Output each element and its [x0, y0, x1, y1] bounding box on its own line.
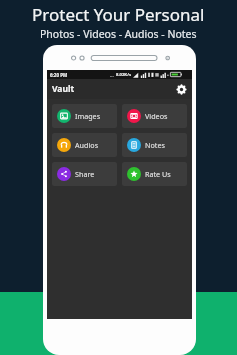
staticText: Rate Us: [145, 169, 171, 179]
staticText: Share: [75, 169, 95, 179]
staticText: Notes: [145, 140, 165, 150]
staticText: Images: [75, 111, 101, 121]
staticText: Photos - Videos - Audios - Notes: [40, 27, 197, 41]
staticText: 6:20 PM: [50, 72, 68, 78]
button[interactable]: Notes: [122, 133, 187, 157]
staticText: ...: [110, 72, 114, 78]
staticText: 8.02K/s: [116, 72, 131, 78]
staticText: Vault: [52, 83, 75, 95]
button[interactable]: Images: [52, 104, 117, 128]
staticText: Protect Your Personal: [32, 3, 205, 26]
button[interactable]: Videos: [122, 104, 187, 128]
button[interactable]: Settings: [175, 83, 188, 96]
staticText: Videos: [145, 111, 168, 121]
staticText: Audios: [75, 140, 99, 150]
button[interactable]: Audios: [52, 133, 117, 157]
button[interactable]: Rate Us: [122, 162, 187, 186]
button[interactable]: Share: [52, 162, 117, 186]
